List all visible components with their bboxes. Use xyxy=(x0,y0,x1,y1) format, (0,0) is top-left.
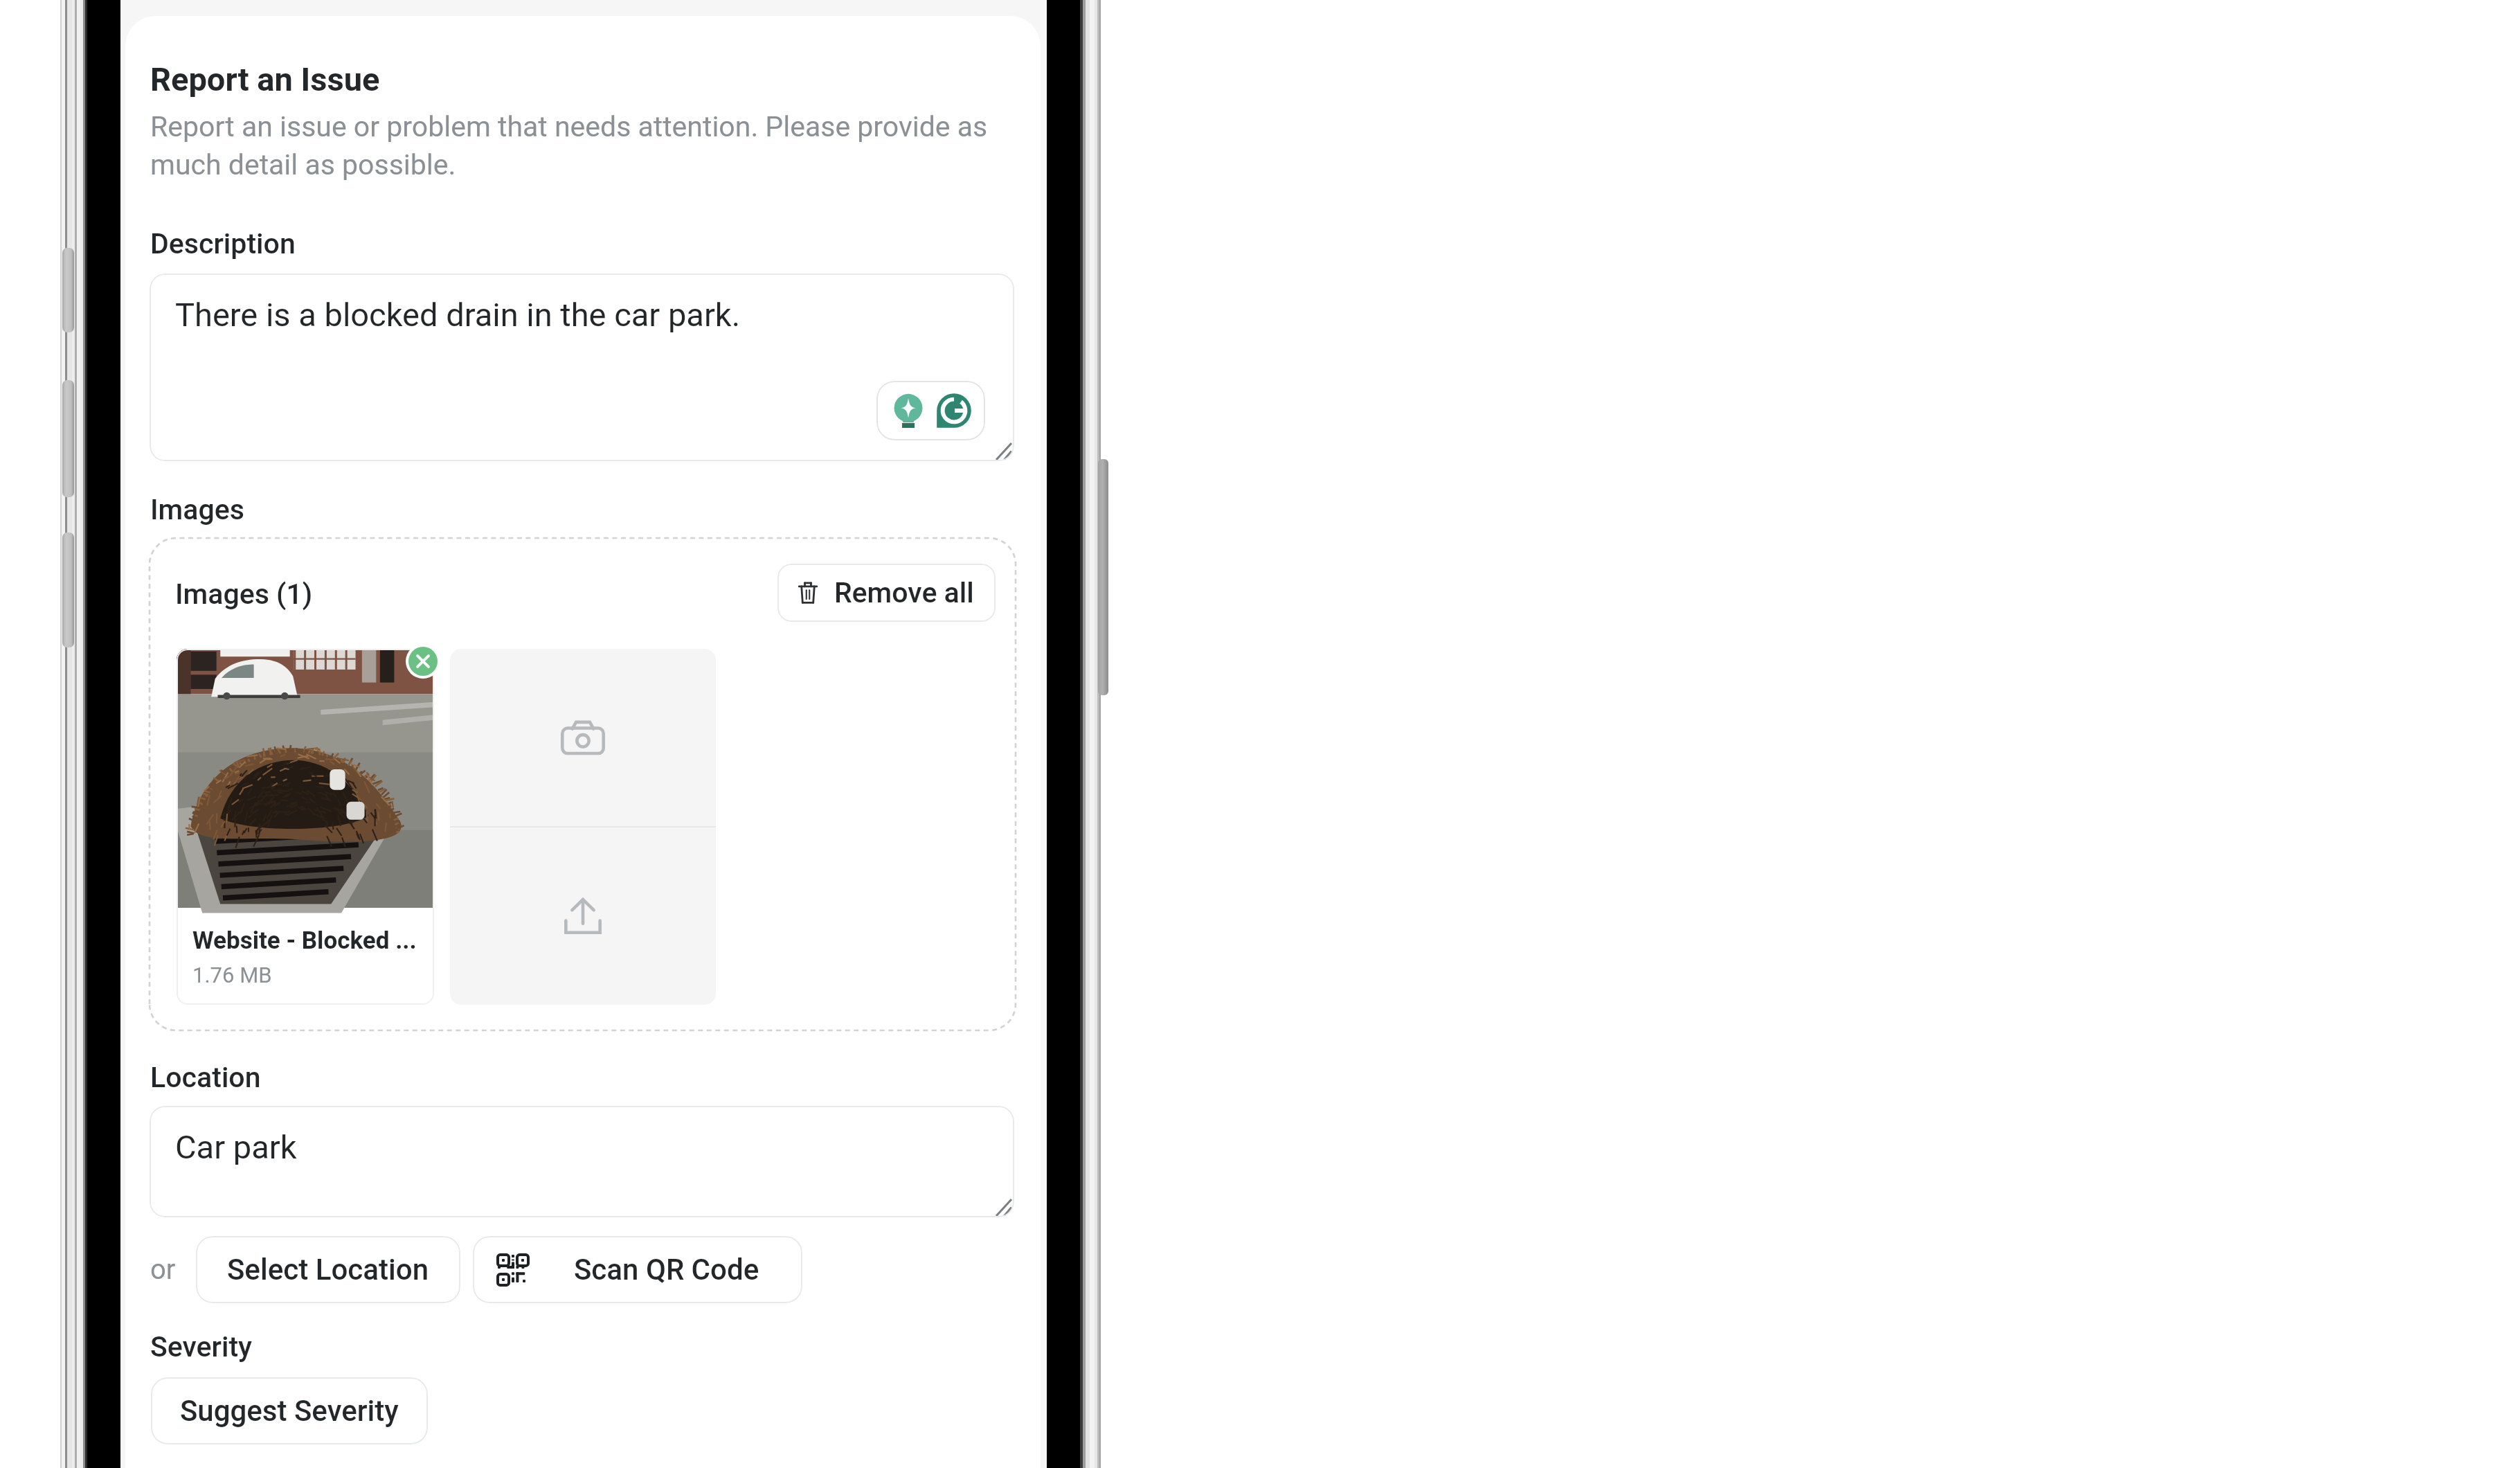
staticText: or xyxy=(150,1253,176,1286)
staticText: Website - Blocked ... xyxy=(192,927,417,955)
button[interactable]: Website - Blocked ... xyxy=(177,649,434,1005)
staticText: Images (1) xyxy=(175,578,313,611)
staticText: Suggest Severity xyxy=(180,1394,399,1428)
staticText: Description xyxy=(150,227,296,260)
staticText: Car park xyxy=(175,1128,297,1166)
button[interactable]: Take photo xyxy=(450,649,716,826)
button[interactable]: Grammarly xyxy=(876,381,985,440)
button[interactable]: There is a blocked drain in the car park… xyxy=(150,274,1014,461)
staticText: Report an issue or problem that needs at… xyxy=(150,110,988,181)
staticText: Remove all xyxy=(834,576,974,609)
staticText: Severity xyxy=(150,1330,253,1363)
button[interactable]: Upload image xyxy=(450,827,716,1005)
button[interactable]: Select Location xyxy=(196,1236,460,1303)
button[interactable]: Suggest Severity xyxy=(151,1377,428,1444)
staticText: Location xyxy=(150,1061,261,1094)
button[interactable]: Remove image xyxy=(408,647,438,676)
button[interactable]: Remove all xyxy=(777,564,996,622)
staticText: 1.76 MB xyxy=(192,963,272,987)
staticText: Select Location xyxy=(227,1253,429,1287)
staticText: There is a blocked drain in the car park… xyxy=(175,296,741,334)
button[interactable]: Car park xyxy=(150,1106,1014,1217)
staticText: Scan QR Code xyxy=(574,1253,759,1287)
staticText: Images xyxy=(150,493,244,526)
staticText: Report an Issue xyxy=(150,60,380,98)
button[interactable]: Scan QR Code xyxy=(473,1236,802,1303)
